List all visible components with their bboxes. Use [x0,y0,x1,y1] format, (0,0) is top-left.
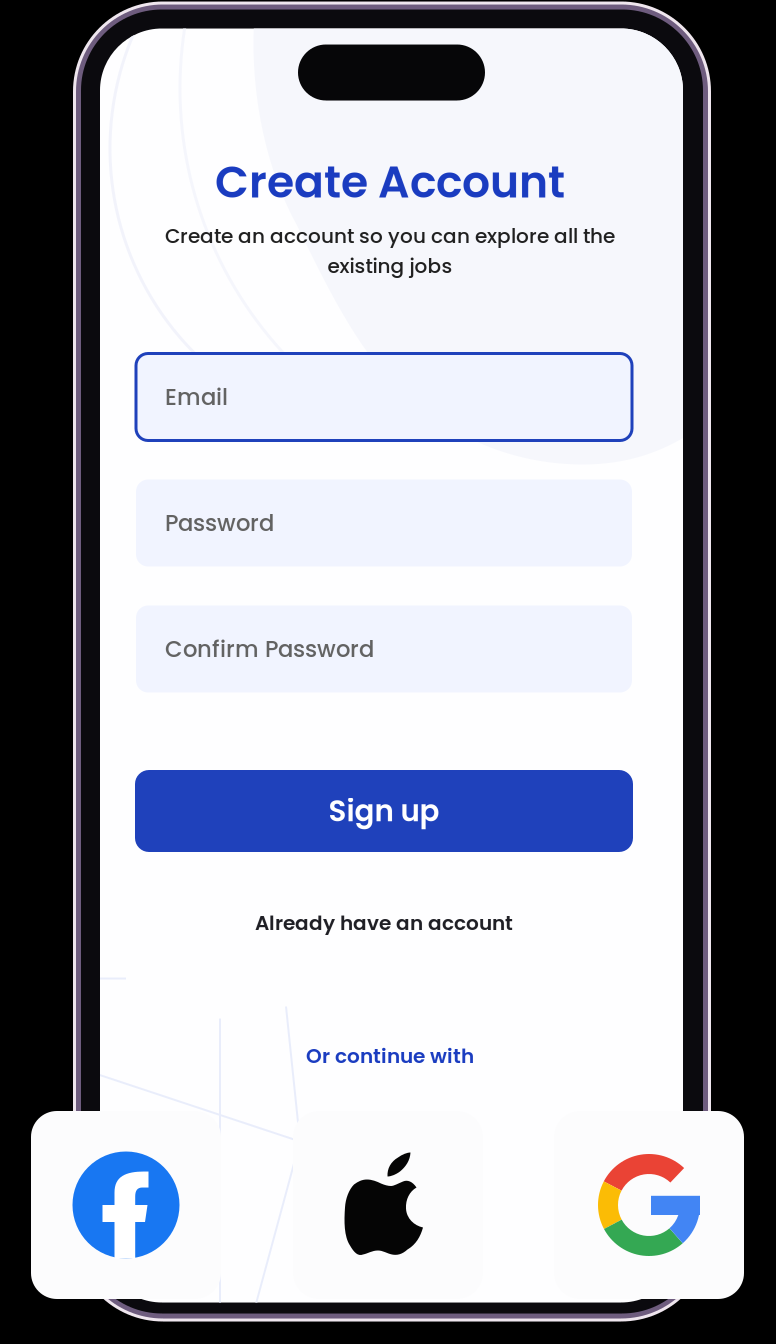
button[interactable]: Continue with Facebook [31,1111,221,1299]
button[interactable]: Confirm Password [136,605,632,692]
staticText: Password [165,507,274,539]
button[interactable]: Or continue with [296,1032,484,1080]
button[interactable]: Password [136,479,632,566]
button[interactable]: Email [136,353,632,440]
button[interactable]: Continue with Apple [293,1111,483,1299]
staticText: Create an account so you can explore all… [165,222,615,250]
button[interactable]: Already have an account [245,899,523,947]
button[interactable]: Sign up [135,770,633,852]
staticText: Create Account [215,151,565,213]
staticText: Confirm Password [165,633,374,665]
button[interactable]: Continue with Google [554,1111,744,1299]
staticText: Or continue with [306,1042,474,1070]
staticText: existing jobs [327,252,452,280]
staticText: Already have an account [255,909,513,937]
staticText: Email [165,381,228,413]
staticText: Sign up [328,790,439,832]
